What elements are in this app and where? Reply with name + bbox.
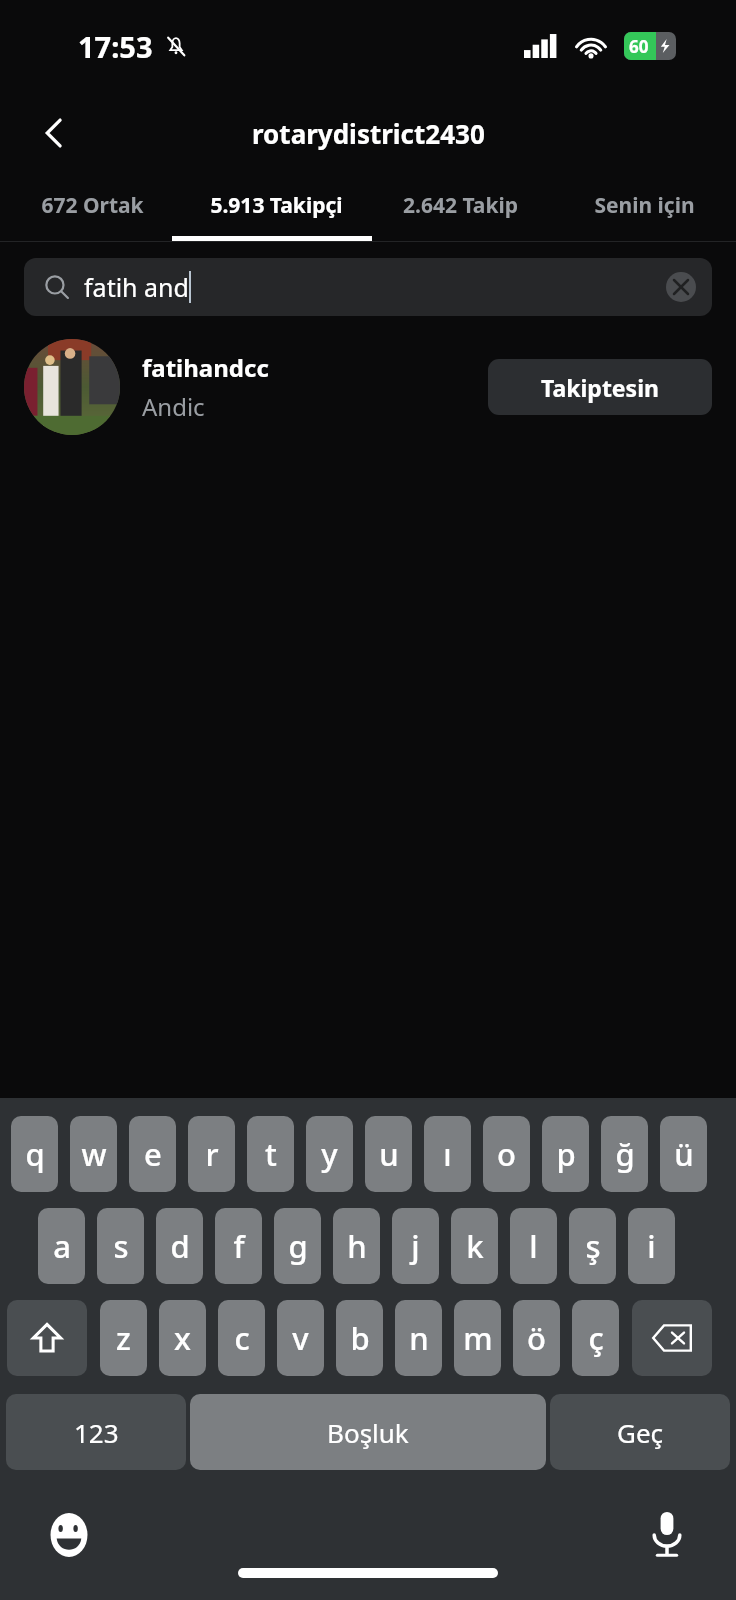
- staticText: Boşluk: [327, 1415, 409, 1450]
- button[interactable]: x: [159, 1300, 206, 1376]
- button[interactable]: Back: [28, 107, 80, 159]
- staticText: o: [497, 1133, 516, 1175]
- button[interactable]: o: [483, 1116, 530, 1192]
- staticText: t: [265, 1133, 277, 1175]
- staticText: 17:53: [78, 27, 153, 66]
- button[interactable]: ı: [424, 1116, 471, 1192]
- button[interactable]: h: [333, 1208, 380, 1284]
- staticText: fatihandcc: [142, 351, 269, 384]
- button[interactable]: Shift: [7, 1300, 87, 1376]
- button[interactable]: Takiptesin: [488, 359, 712, 415]
- button[interactable]: g: [274, 1208, 321, 1284]
- staticText: f: [233, 1225, 245, 1267]
- button[interactable]: 672 Ortak: [0, 174, 184, 236]
- button[interactable]: ü: [660, 1116, 707, 1192]
- staticText: z: [116, 1317, 131, 1359]
- button[interactable]: ö: [513, 1300, 560, 1376]
- staticText: ğ: [615, 1133, 635, 1175]
- button[interactable]: Backspace: [632, 1300, 712, 1376]
- button[interactable]: fatih and: [24, 258, 712, 316]
- button[interactable]: s: [97, 1208, 144, 1284]
- button[interactable]: ş: [569, 1208, 616, 1284]
- staticText: 672 Ortak: [41, 191, 144, 220]
- staticText: s: [113, 1225, 129, 1267]
- staticText: r: [205, 1133, 219, 1175]
- button[interactable]: p: [542, 1116, 589, 1192]
- staticText: y: [321, 1133, 338, 1175]
- staticText: h: [347, 1225, 367, 1267]
- button[interactable]: e: [129, 1116, 176, 1192]
- button[interactable]: n: [395, 1300, 442, 1376]
- staticText: ş: [585, 1225, 601, 1267]
- staticText: e: [144, 1133, 162, 1175]
- button[interactable]: r: [188, 1116, 235, 1192]
- staticText: ö: [527, 1317, 546, 1359]
- button[interactable]: t: [247, 1116, 294, 1192]
- button[interactable]: ğ: [601, 1116, 648, 1192]
- button[interactable]: Senin için: [552, 174, 736, 236]
- staticText: k: [466, 1225, 484, 1267]
- staticText: 2.642 Takip: [403, 191, 518, 220]
- staticText: Takiptesin: [541, 372, 659, 403]
- button[interactable]: w: [70, 1116, 117, 1192]
- button[interactable]: 5.913 Takipçi: [184, 174, 368, 236]
- button[interactable]: f: [215, 1208, 262, 1284]
- staticText: ü: [674, 1133, 694, 1175]
- staticText: Senin için: [594, 191, 695, 220]
- button[interactable]: Geç: [550, 1394, 730, 1470]
- button[interactable]: u: [365, 1116, 412, 1192]
- button[interactable]: l: [510, 1208, 557, 1284]
- staticText: l: [529, 1225, 538, 1267]
- staticText: n: [409, 1317, 429, 1359]
- button[interactable]: k: [451, 1208, 498, 1284]
- staticText: 60: [629, 35, 649, 58]
- button[interactable]: fatihandcc: [0, 332, 736, 442]
- staticText: b: [350, 1317, 370, 1359]
- staticText: 123: [74, 1415, 119, 1450]
- button[interactable]: y: [306, 1116, 353, 1192]
- staticText: g: [288, 1225, 308, 1267]
- button[interactable]: v: [277, 1300, 324, 1376]
- staticText: u: [379, 1133, 399, 1175]
- staticText: Geç: [617, 1415, 664, 1450]
- button[interactable]: z: [100, 1300, 147, 1376]
- button[interactable]: c: [218, 1300, 265, 1376]
- button[interactable]: Voice input: [642, 1510, 692, 1560]
- button[interactable]: j: [392, 1208, 439, 1284]
- staticText: v: [292, 1317, 309, 1359]
- staticText: w: [81, 1133, 107, 1175]
- button[interactable]: 2.642 Takip: [368, 174, 552, 236]
- button[interactable]: b: [336, 1300, 383, 1376]
- button[interactable]: q: [11, 1116, 58, 1192]
- button[interactable]: Emoji: [44, 1510, 94, 1560]
- staticText: m: [463, 1317, 493, 1359]
- staticText: q: [25, 1133, 45, 1175]
- button[interactable]: Clear: [666, 272, 696, 302]
- staticText: c: [234, 1317, 250, 1359]
- staticText: j: [411, 1225, 420, 1267]
- staticText: a: [53, 1225, 71, 1267]
- staticText: x: [174, 1317, 191, 1359]
- staticText: fatih and: [84, 270, 189, 304]
- staticText: i: [647, 1225, 656, 1267]
- button[interactable]: d: [156, 1208, 203, 1284]
- staticText: rotarydistrict2430: [252, 116, 485, 151]
- button[interactable]: m: [454, 1300, 501, 1376]
- button[interactable]: i: [628, 1208, 675, 1284]
- staticText: Andic: [142, 390, 205, 423]
- staticText: ç: [588, 1317, 604, 1359]
- staticText: d: [170, 1225, 190, 1267]
- button[interactable]: a: [38, 1208, 85, 1284]
- staticText: 5.913 Takipçi: [210, 191, 343, 220]
- staticText: ı: [443, 1133, 452, 1175]
- button[interactable]: 123: [6, 1394, 186, 1470]
- button[interactable]: Boşluk: [190, 1394, 546, 1470]
- staticText: p: [556, 1133, 576, 1175]
- button[interactable]: ç: [572, 1300, 619, 1376]
